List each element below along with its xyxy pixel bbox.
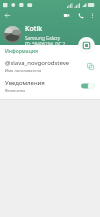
- staticText: Kotik: [25, 24, 43, 34]
- button[interactable]: Уведомления: [0, 78, 100, 95]
- staticText: Имя пользователя: [5, 68, 42, 73]
- button[interactable]: Video call: [61, 10, 72, 21]
- button[interactable]: Copy username: [85, 61, 95, 71]
- staticText: Уведомления: [5, 79, 45, 87]
- button[interactable]: @slavа_novgorodsteve: [0, 58, 100, 75]
- button[interactable]: Edit: [78, 37, 95, 54]
- button[interactable]: Notifications toggle: [81, 82, 95, 90]
- button[interactable]: More options: [87, 10, 98, 21]
- button[interactable]: Call: [75, 10, 86, 21]
- staticText: Samsung Galaxy: [25, 35, 61, 41]
- staticText: ID: 58406204, DC 2: [25, 41, 66, 45]
- staticText: Включены: [5, 88, 26, 93]
- button[interactable]: Back: [2, 10, 13, 21]
- button[interactable]: Kotik: [4, 24, 96, 45]
- staticText: @slavа_novgorodsteve: [5, 59, 70, 67]
- staticText: Информация: [5, 48, 38, 55]
